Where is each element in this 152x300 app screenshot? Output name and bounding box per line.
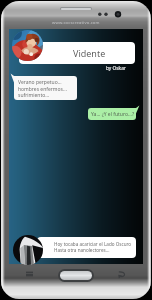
- button[interactable]: Menu: [26, 271, 33, 277]
- staticText: by Oskar: [106, 65, 126, 72]
- button[interactable]: Profile photo: [13, 235, 43, 265]
- button[interactable]: Vidente: [19, 42, 135, 64]
- button[interactable]: Home: [58, 269, 94, 282]
- button[interactable]: Profile photo: [12, 30, 43, 61]
- staticText: Hoy tocaba acariciar el Lado Oscuro Hast…: [54, 241, 132, 253]
- staticText: Vidente: [73, 47, 106, 59]
- button[interactable]: Hoy tocaba acariciar el Lado Oscuro Hast…: [37, 237, 136, 258]
- staticText: www.cocscreativo.com: [52, 20, 100, 26]
- staticText: Ya... ¿Y el futuro...?: [91, 111, 135, 118]
- staticText: Verano perpetuo... hombres enfermos... s…: [18, 79, 67, 98]
- button[interactable]: Back: [117, 270, 126, 279]
